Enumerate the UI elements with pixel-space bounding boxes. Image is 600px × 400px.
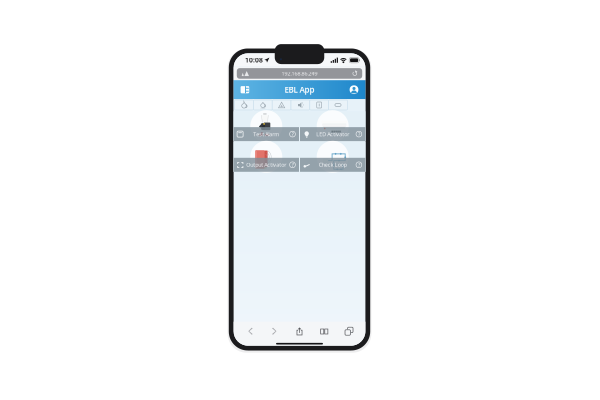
button[interactable]: Loop (329, 100, 347, 110)
button[interactable]: Fault (272, 100, 291, 110)
button[interactable]: Tabs (337, 322, 361, 341)
button[interactable]: Panel (310, 100, 329, 110)
staticText: LED Activator (316, 131, 349, 138)
staticText: ? (358, 131, 360, 138)
button[interactable]: Smoke (253, 100, 272, 110)
staticText: EBL App (284, 84, 314, 95)
button[interactable]: Back (238, 322, 262, 341)
staticText: 10:08 (245, 56, 263, 64)
button[interactable]: Sounder (291, 100, 310, 110)
button[interactable]: Bookmarks (312, 322, 337, 341)
staticText: ? (291, 131, 293, 138)
staticText: 192.168.86.249 (281, 70, 317, 77)
button[interactable]: LED Activator (300, 111, 365, 141)
staticText: ? (358, 161, 360, 168)
staticText: Test Alarm (253, 131, 279, 138)
button[interactable]: Share (287, 322, 312, 341)
button[interactable]: Menu (236, 81, 254, 99)
staticText: ? (291, 161, 293, 168)
button[interactable]: Account (345, 81, 363, 99)
button[interactable]: Output Activator (234, 142, 299, 172)
staticText: Output Activator (246, 161, 286, 168)
button[interactable]: Fire (235, 100, 253, 110)
staticText: Check Loop (319, 161, 347, 168)
button[interactable]: Check Loop (300, 142, 365, 172)
button[interactable]: Forward (262, 322, 287, 341)
button[interactable]: Address: 192.168.86.249 (234, 68, 365, 79)
button[interactable]: Test Alarm (234, 111, 299, 141)
